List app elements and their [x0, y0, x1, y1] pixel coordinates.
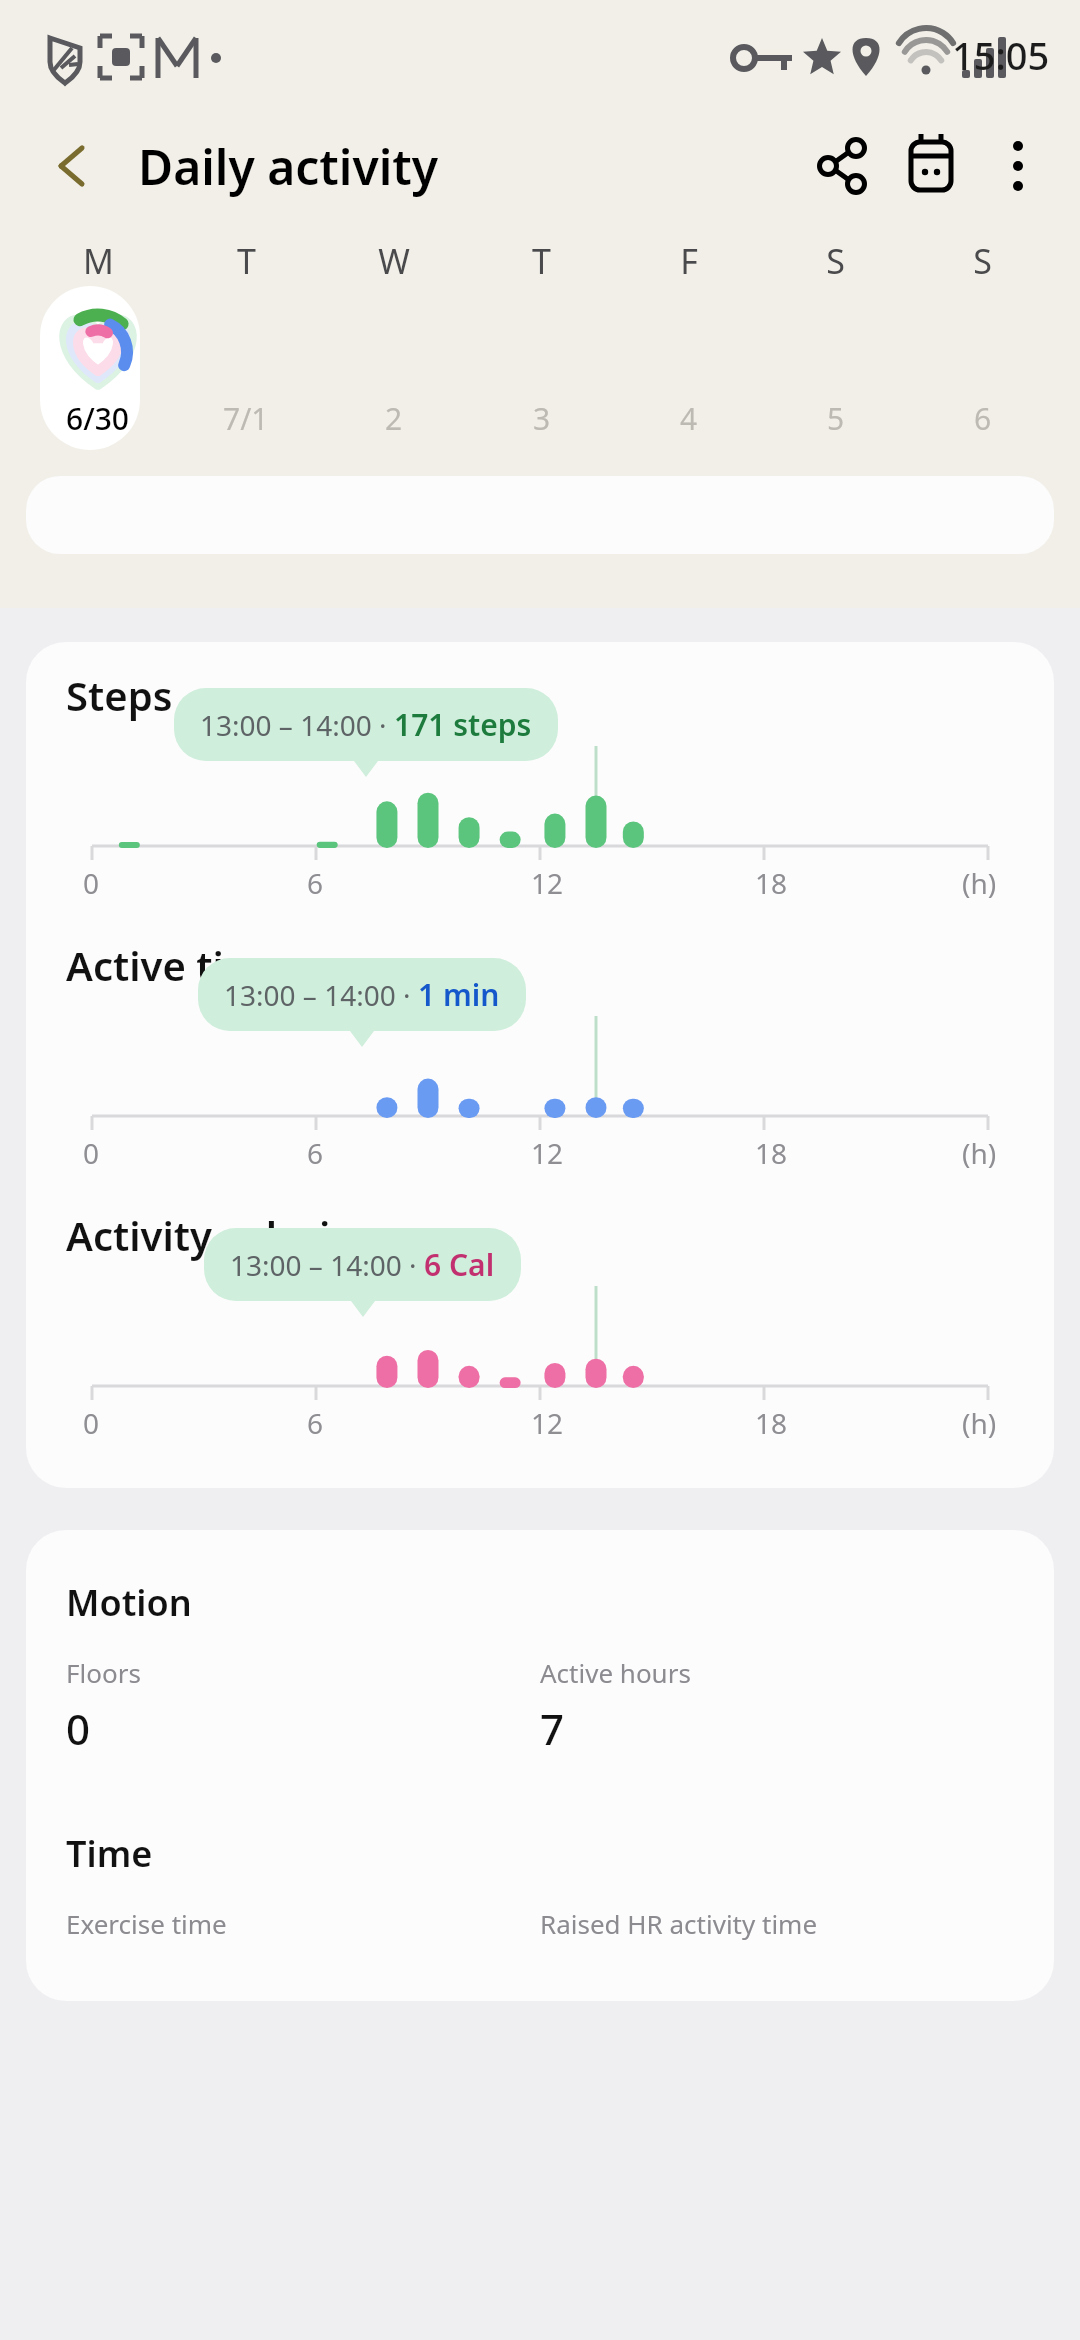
staticText: 6 — [974, 398, 992, 439]
staticText: F — [680, 238, 698, 284]
staticText: 18 — [755, 864, 788, 902]
staticText: T — [237, 238, 256, 284]
button[interactable]: T — [468, 238, 615, 450]
staticText: 13:00 – 14:00 · — [224, 976, 418, 1014]
staticText: Raised HR activity time — [540, 1906, 1014, 1941]
staticText: Activity calories — [66, 1208, 374, 1262]
staticText: 2 — [385, 398, 403, 439]
staticText: (h) — [962, 1134, 997, 1172]
staticText: 0 — [83, 1404, 100, 1442]
staticText: 12 — [531, 864, 564, 902]
button[interactable]: W — [320, 238, 468, 450]
button[interactable]: Back — [46, 138, 102, 194]
staticText: M — [83, 238, 114, 284]
staticText: S — [973, 238, 992, 284]
staticText: W — [378, 238, 410, 284]
staticText: Active hours — [540, 1655, 691, 1690]
staticText: 13:00 – 14:00 · — [200, 706, 394, 744]
button[interactable]: S — [762, 238, 909, 450]
staticText: 12 — [531, 1134, 564, 1172]
staticText: 15:05 — [952, 29, 1050, 81]
button[interactable]: 13:00 – 14:00 · — [230, 1244, 495, 1285]
staticText: Daily activity — [138, 134, 439, 199]
staticText: (h) — [962, 864, 997, 902]
staticText: S — [826, 238, 845, 284]
staticText: 12 — [531, 1404, 564, 1442]
button[interactable]: Motion — [26, 1530, 1054, 2001]
button[interactable]: M — [24, 238, 172, 450]
staticText: Motion — [66, 1578, 192, 1627]
staticText: (h) — [962, 1404, 997, 1442]
button[interactable]: More options — [974, 122, 1062, 210]
staticText: 13:00 – 14:00 · — [230, 1246, 424, 1284]
button[interactable]: S — [909, 238, 1056, 450]
staticText: 1 min — [418, 974, 500, 1015]
staticText: Exercise time — [66, 1906, 540, 1941]
staticText: 5 — [827, 398, 845, 439]
button[interactable]: Share — [798, 122, 886, 210]
staticText: 7/1 — [223, 398, 269, 439]
staticText: Steps — [66, 668, 173, 722]
staticText: 7 — [540, 1700, 565, 1757]
staticText: 0 — [83, 864, 100, 902]
staticText: 171 steps — [394, 704, 532, 745]
staticText: 6 — [307, 1134, 324, 1172]
staticText: 4 — [680, 398, 698, 439]
button[interactable]: T — [172, 238, 320, 450]
staticText: 18 — [755, 1134, 788, 1172]
staticText: 6 — [307, 864, 324, 902]
staticText: 6 Cal — [424, 1244, 495, 1285]
staticText: Time — [66, 1829, 153, 1878]
staticText: 6/30 — [66, 398, 130, 439]
staticText: 18 — [755, 1404, 788, 1442]
staticText: 0 — [66, 1700, 91, 1757]
staticText: 0 — [83, 1134, 100, 1172]
button[interactable]: 13:00 – 14:00 · — [200, 704, 532, 745]
button[interactable]: 13:00 – 14:00 · — [224, 974, 500, 1015]
staticText: Active time — [66, 938, 286, 992]
button[interactable]: F — [615, 238, 762, 450]
staticText: Floors — [66, 1655, 141, 1690]
button[interactable]: Calendar — [886, 122, 974, 210]
staticText: 6 — [307, 1404, 324, 1442]
button[interactable]: Steps — [26, 642, 1054, 1488]
staticText: T — [532, 238, 551, 284]
staticText: 3 — [533, 398, 551, 439]
